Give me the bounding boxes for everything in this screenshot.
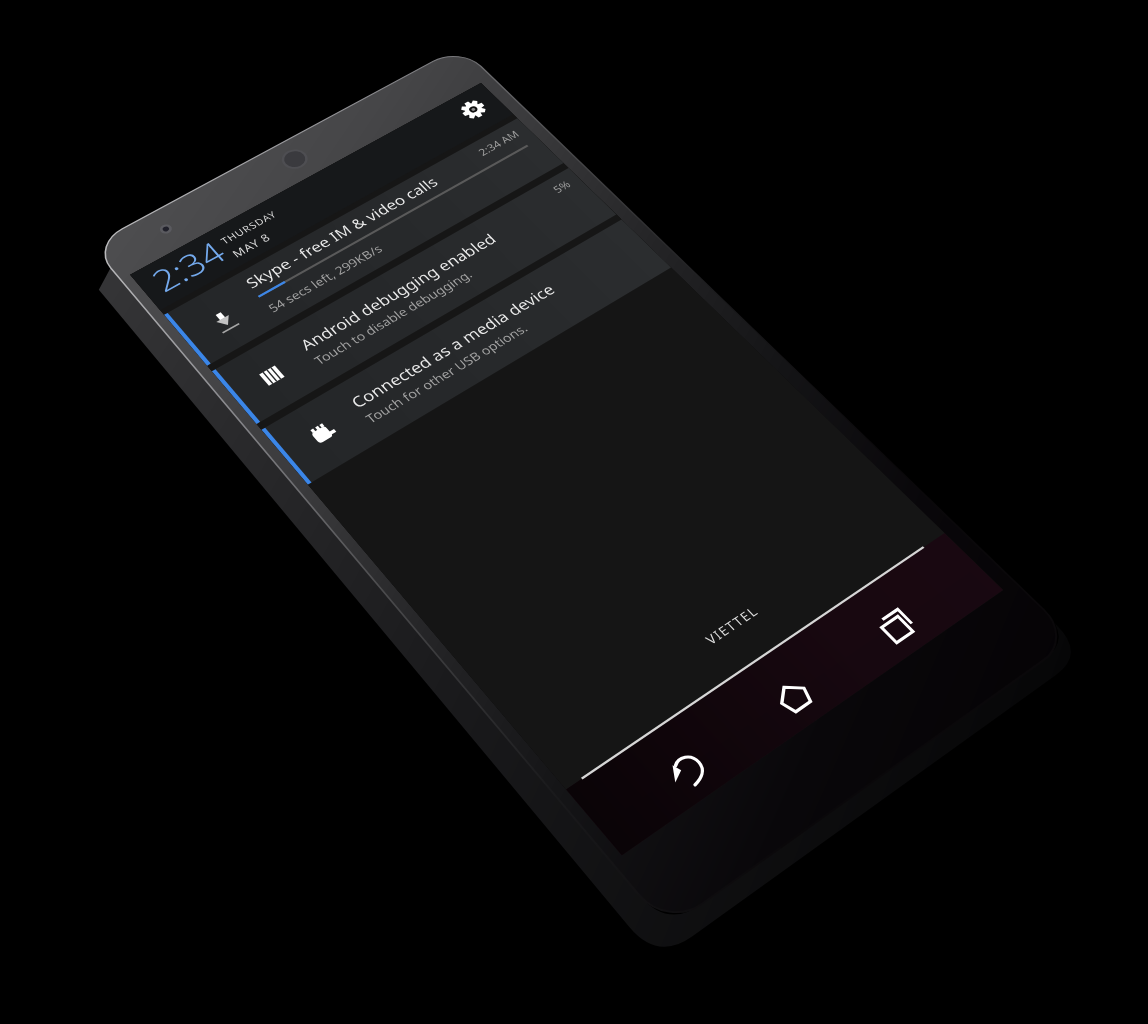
button[interactable]: Android phone showing the notification s… — [0, 0, 1148, 1024]
